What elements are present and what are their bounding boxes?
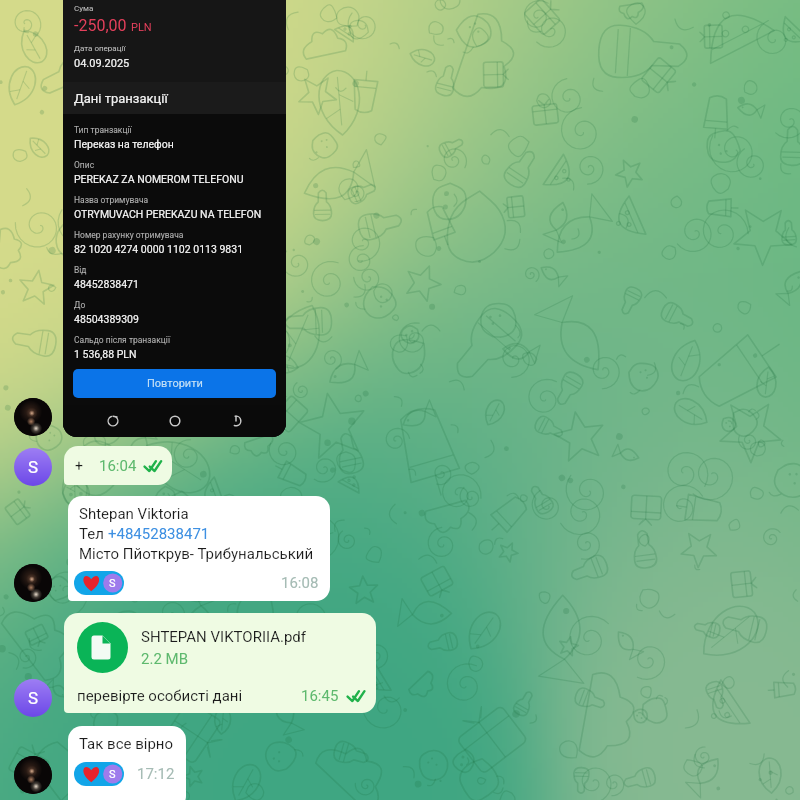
button[interactable]: Heart reaction xyxy=(74,571,124,595)
staticText: + xyxy=(75,458,83,474)
button[interactable]: Sender avatar xyxy=(14,448,52,486)
button[interactable]: Contact avatar xyxy=(14,398,52,436)
staticText: 48452838471 xyxy=(74,278,139,290)
button[interactable]: Heart reaction xyxy=(74,762,124,786)
staticText: перевірте особисті дані xyxy=(77,687,243,705)
button[interactable]: + xyxy=(64,446,172,485)
button[interactable]: Sender avatar xyxy=(14,679,52,717)
staticText: 1 536,88 PLN xyxy=(74,348,137,360)
staticText: Сума xyxy=(74,4,94,13)
staticText: Дата операції xyxy=(74,44,126,53)
staticText: Від xyxy=(74,265,87,275)
button[interactable]: Home xyxy=(164,410,186,432)
staticText: Місто Пйоткрув- Трибунальський xyxy=(79,545,314,563)
staticText: 2.2 MB xyxy=(141,650,188,668)
staticText: Тип транзакції xyxy=(74,125,132,135)
staticText: 82 1020 4274 0000 1102 0113 9831 xyxy=(74,243,244,255)
staticText: Тел xyxy=(79,525,108,543)
staticText: PLN xyxy=(131,21,152,34)
staticText: Номер рахунку отримувача xyxy=(74,230,184,240)
button[interactable]: Сума xyxy=(63,0,286,437)
staticText: 16:45 xyxy=(301,687,339,705)
staticText: S xyxy=(109,768,116,781)
staticText: PEREKAZ ZA NOMEROM TELEFONU xyxy=(74,173,244,185)
staticText: Назва отримувача xyxy=(74,195,149,205)
staticText: 16:04 xyxy=(99,457,137,475)
staticText: 17:12 xyxy=(137,765,175,783)
button[interactable]: Повторити xyxy=(73,369,276,398)
staticText: S xyxy=(28,688,39,708)
staticText: Shtepan Viktoria xyxy=(79,505,189,523)
staticText: Дані транзакції xyxy=(74,91,168,106)
staticText: S xyxy=(28,457,39,477)
button[interactable]: Recents xyxy=(102,410,124,432)
staticText: 16:08 xyxy=(281,574,319,592)
staticText: До xyxy=(74,300,86,310)
button[interactable]: Shtepan Viktoria xyxy=(68,496,330,601)
staticText: Опис xyxy=(74,160,95,170)
staticText: OTRYMUVACH PEREKAZU NA TELEFON xyxy=(74,208,262,220)
staticText: Так все вірно xyxy=(79,735,174,753)
staticText: -250,00 xyxy=(74,16,127,35)
button[interactable]: Contact avatar xyxy=(14,756,52,794)
staticText: SHTEPAN VIKTORIIA.pdf xyxy=(141,628,307,646)
staticText: 04.09.2025 xyxy=(74,57,130,70)
staticText: Сальдо після транзакції xyxy=(74,335,171,345)
staticText: 48504389309 xyxy=(74,313,139,325)
staticText: Повторити xyxy=(147,377,203,390)
button[interactable]: Back xyxy=(225,410,247,432)
staticText: Переказ на телефон xyxy=(74,138,174,150)
button[interactable]: Contact avatar xyxy=(14,564,52,602)
staticText: S xyxy=(109,577,116,590)
button[interactable]: Так все вірно xyxy=(68,726,186,800)
button[interactable]: SHTEPAN VIKTORIIA.pdf xyxy=(64,613,376,713)
staticText: +48452838471 xyxy=(108,525,210,543)
